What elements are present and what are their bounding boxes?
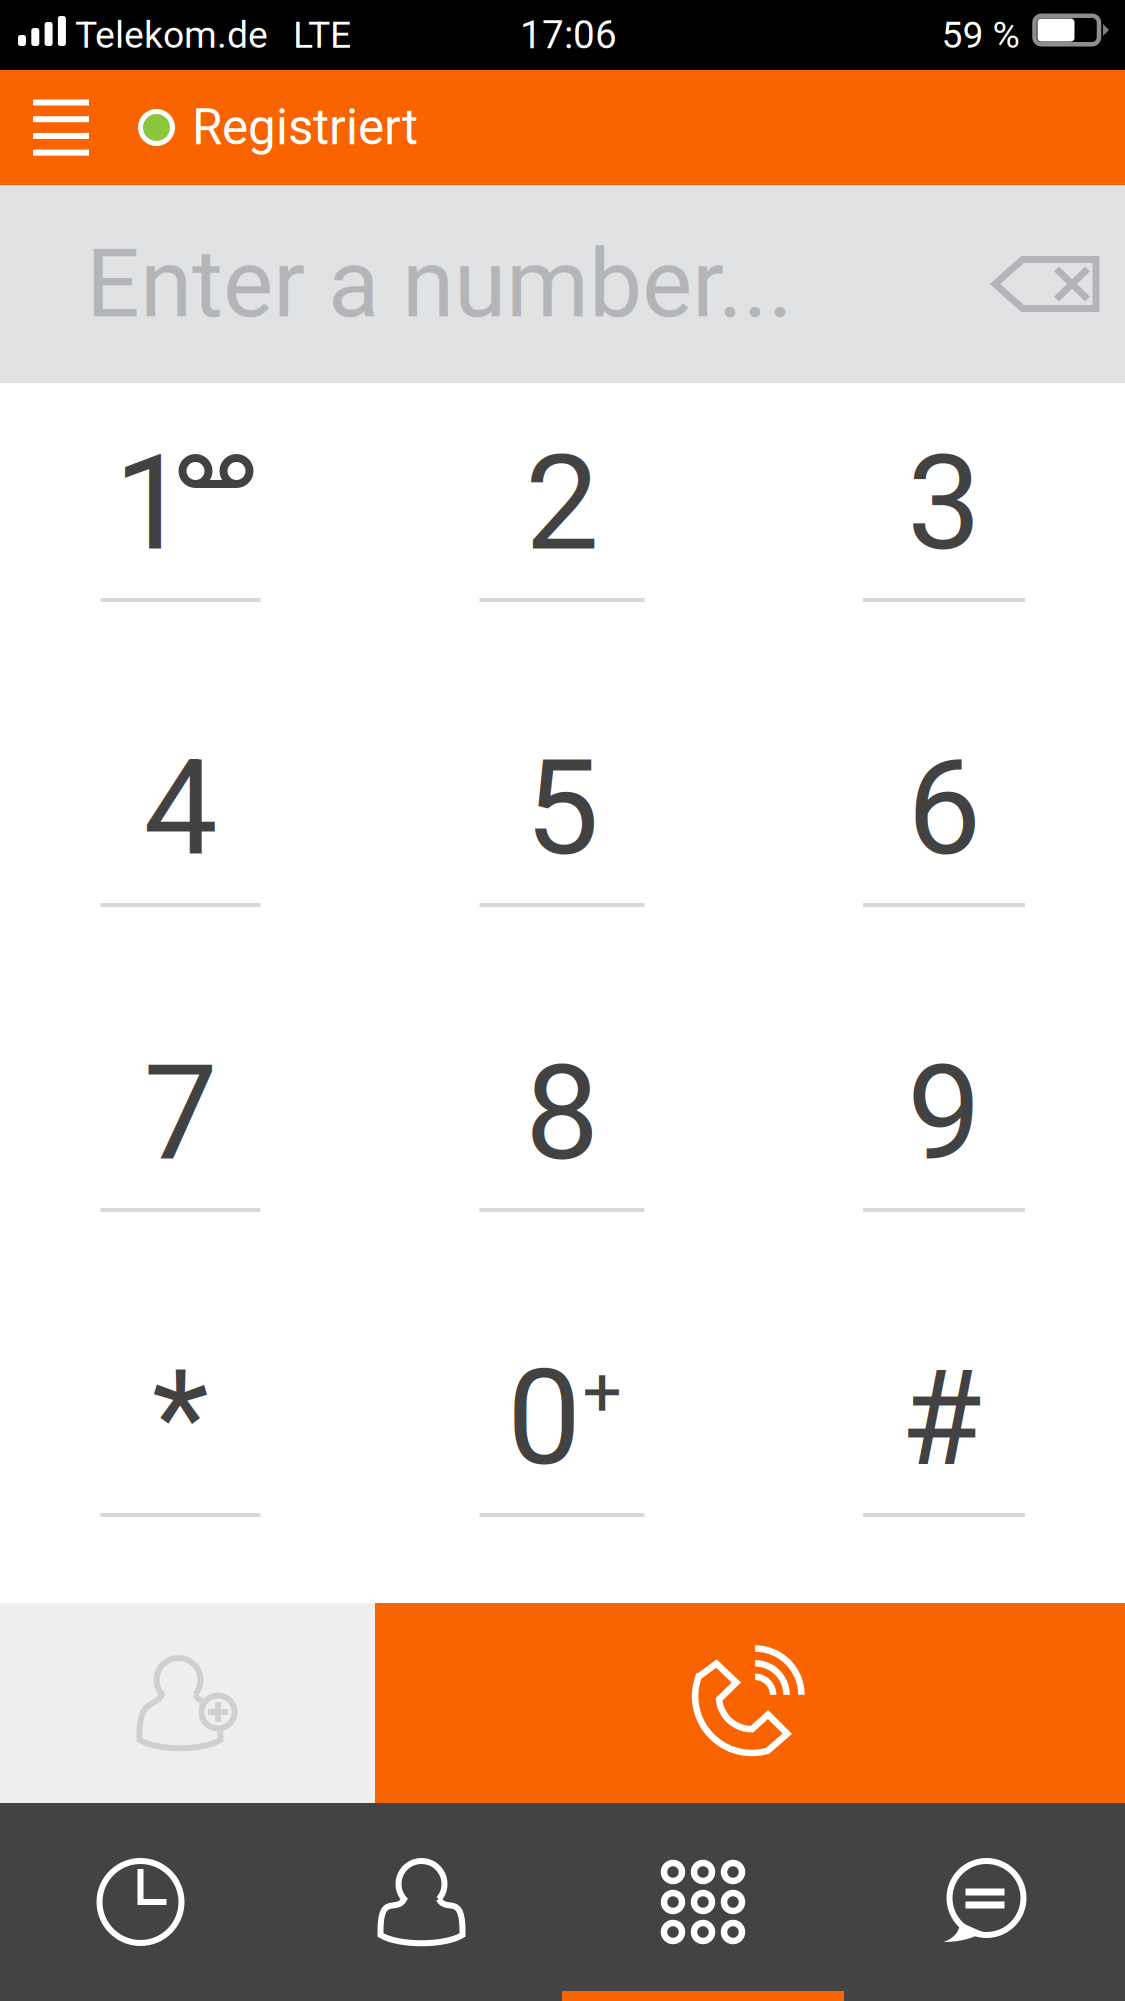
button[interactable]: Recents <box>0 1803 281 2001</box>
staticText: # <box>900 1341 981 1496</box>
button[interactable]: Messages <box>844 1803 1125 2001</box>
staticText: Enter a number... <box>86 228 793 339</box>
button[interactable]: 4 <box>0 688 361 993</box>
button[interactable]: 5 <box>361 688 763 993</box>
button[interactable]: Menu <box>0 70 122 185</box>
button[interactable]: # <box>763 1298 1125 1603</box>
button[interactable]: Call <box>375 1603 1125 1803</box>
staticText: 5 <box>525 731 599 886</box>
staticText: 9 <box>907 1036 981 1191</box>
staticText: 3 <box>907 426 981 581</box>
button[interactable]: * <box>0 1298 361 1603</box>
button[interactable]: 1 <box>0 383 361 688</box>
button[interactable]: 9 <box>763 993 1125 1298</box>
staticText: 6 <box>907 731 981 886</box>
staticText: LTE <box>293 13 351 57</box>
button[interactable]: Contacts <box>281 1803 562 2001</box>
button[interactable]: 6 <box>763 688 1125 993</box>
staticText: * <box>152 1341 209 1496</box>
button[interactable]: 3 <box>763 383 1125 688</box>
button[interactable]: 0 <box>361 1298 763 1603</box>
button[interactable]: Delete <box>966 185 1125 383</box>
staticText: 17:06 <box>520 12 617 58</box>
button[interactable]: 2 <box>361 383 763 688</box>
staticText: 8 <box>525 1036 599 1191</box>
staticText: 59 % <box>941 13 1019 57</box>
button[interactable]: Add contact <box>0 1603 375 1803</box>
button[interactable]: 7 <box>0 993 361 1298</box>
staticText: + <box>582 1351 621 1432</box>
button[interactable]: 8 <box>361 993 763 1298</box>
staticText: 0 <box>507 1341 581 1496</box>
staticText: 4 <box>143 731 217 886</box>
staticText: 2 <box>525 426 599 581</box>
staticText: 7 <box>143 1036 217 1191</box>
staticText: Telekom.de <box>75 13 268 57</box>
button[interactable]: Keypad <box>562 1803 844 2001</box>
staticText: Registriert <box>192 99 418 156</box>
staticText: 1 <box>114 426 188 581</box>
